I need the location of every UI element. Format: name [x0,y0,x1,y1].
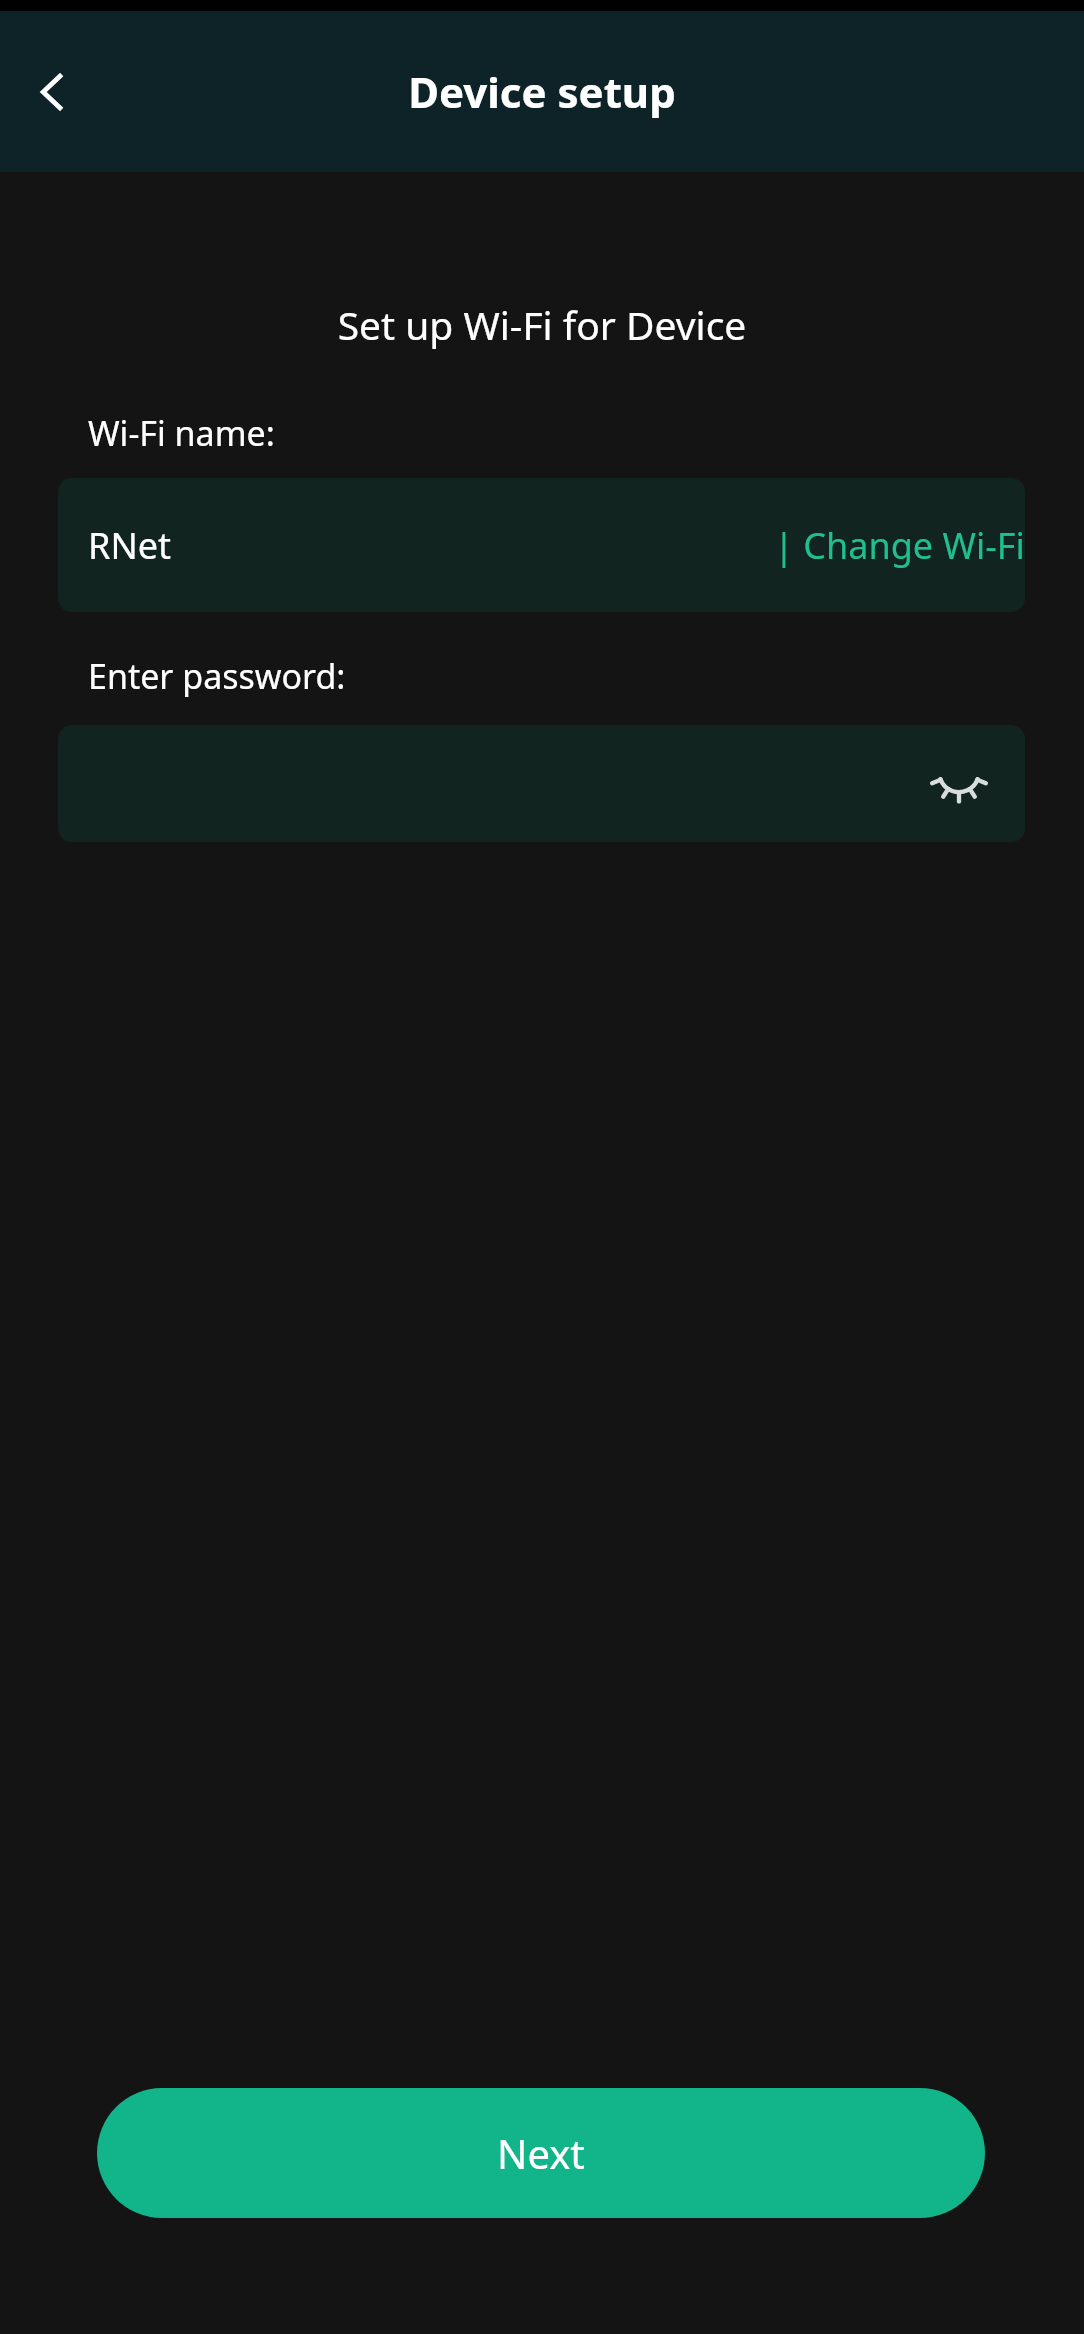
staticText: Set up Wi-Fi for Device [0,298,1084,351]
staticText: Device setup [408,63,676,120]
staticText: | Change Wi-Fi [774,521,1025,570]
button[interactable]: Back [8,48,96,136]
staticText: Next [497,2126,585,2180]
button[interactable]: | Change Wi-Fi [774,478,1025,612]
button[interactable]: Show password [58,725,1025,842]
staticText: Wi-Fi name: [88,410,275,456]
staticText: Enter password: [88,653,346,699]
button[interactable]: Next [97,2088,985,2218]
staticText: RNet [88,521,172,570]
button[interactable]: RNet [58,478,1025,612]
button[interactable]: Show password [921,746,997,822]
